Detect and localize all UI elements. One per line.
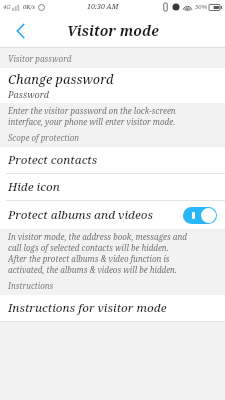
staticText: Change password [8, 71, 114, 88]
staticText: Visitor password [8, 53, 72, 64]
staticText: 50% [195, 3, 208, 11]
button[interactable]: Hide icon [0, 174, 225, 200]
staticText: Hide icon [8, 179, 60, 195]
staticText: Instructions for visitor mode [8, 300, 167, 316]
staticText: 10:30 AM [87, 2, 119, 12]
staticText: After the protect albums & video functio… [8, 253, 170, 264]
staticText: In visitor mode, the address book, messa… [8, 231, 187, 242]
button[interactable]: Back [8, 18, 34, 44]
staticText: Visitor mode [67, 21, 159, 40]
staticText: call logs of selected contacts will be h… [8, 242, 169, 253]
staticText: 4G [3, 3, 11, 11]
staticText: Scope of protection [8, 132, 80, 143]
button[interactable]: Protect albums and videos toggle [183, 207, 217, 224]
staticText: Protect albums and videos [8, 207, 154, 223]
button[interactable]: Protect contacts [0, 147, 225, 173]
staticText: Password [8, 88, 49, 100]
staticText: Enter the visitor password on the lock-s… [8, 105, 176, 116]
staticText: Instructions [8, 280, 54, 291]
button[interactable]: Protect albums and videos [0, 201, 225, 229]
button[interactable]: Instructions for visitor mode [0, 295, 225, 321]
staticText: 0K/s [23, 3, 36, 11]
staticText: Protect contacts [8, 152, 98, 168]
button[interactable]: Change password [0, 68, 225, 103]
staticText: interface, your phone will enter visitor… [8, 116, 176, 127]
staticText: activated, the albums & videos will be h… [8, 264, 177, 275]
